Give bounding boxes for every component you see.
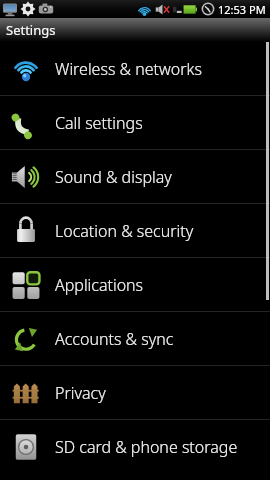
other: Accounts and sync: [10, 323, 42, 355]
other: Location and security: [10, 215, 42, 247]
other: Privacy: [10, 377, 42, 409]
button[interactable]: Sound and display: [0, 150, 270, 203]
staticText: Call settings: [55, 112, 143, 134]
button[interactable]: Wireless and networks: [0, 42, 270, 95]
other: SD card and phone storage: [10, 431, 42, 463]
button[interactable]: Location and security: [0, 204, 270, 257]
staticText: Accounts & sync: [55, 328, 174, 350]
staticText: Sound & display: [55, 166, 172, 188]
button[interactable]: SD card and phone storage: [0, 420, 270, 473]
button[interactable]: Applications: [0, 258, 270, 311]
staticText: Wireless & networks: [55, 58, 202, 80]
button[interactable]: Accounts and sync: [0, 312, 270, 365]
staticText: SD card & phone storage: [55, 436, 238, 458]
staticText: Location & security: [55, 220, 194, 242]
staticText: Settings: [6, 21, 56, 39]
button[interactable]: Privacy: [0, 366, 270, 419]
staticText: 12:53 PM: [218, 2, 266, 17]
other: Wireless and networks: [10, 53, 42, 85]
other: Applications: [10, 269, 42, 301]
other: Call settings: [10, 107, 42, 139]
other: Sound and display: [10, 161, 42, 193]
staticText: Applications: [55, 274, 144, 296]
staticText: Privacy: [55, 382, 106, 404]
button[interactable]: Call settings: [0, 96, 270, 149]
